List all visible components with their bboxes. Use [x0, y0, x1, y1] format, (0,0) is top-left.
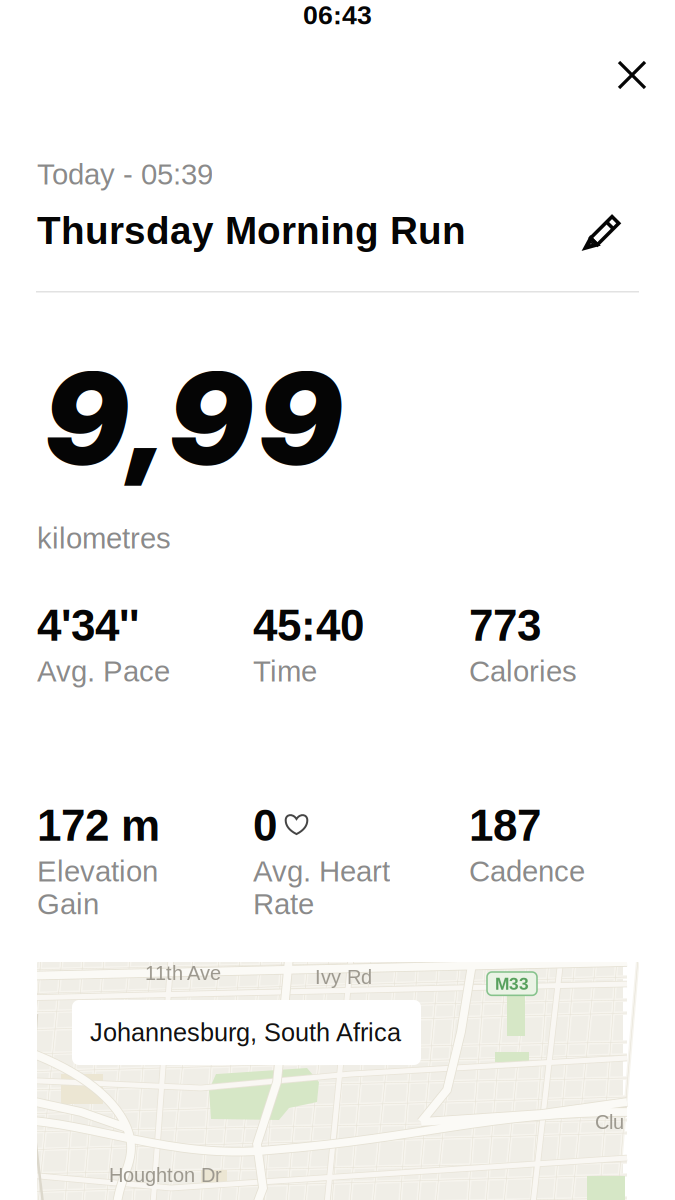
staticText: M33 [495, 974, 529, 993]
staticText: Houghton Dr [109, 1164, 222, 1186]
staticText: Johannesburg, South Africa [90, 1018, 401, 1047]
staticText: Calories [469, 655, 577, 688]
staticText: kilometres [37, 522, 171, 555]
staticText: Elevation Gain [37, 855, 158, 920]
staticText: Time [253, 655, 317, 688]
staticText: 187 [469, 801, 541, 850]
button[interactable]: Edit [572, 198, 634, 260]
staticText: Ivy Rd [315, 966, 372, 988]
staticText: Avg. Heart Rate [253, 855, 390, 920]
staticText: 11th Ave [145, 962, 221, 984]
staticText: 45:40 [253, 601, 364, 650]
staticText: Avg. Pace [37, 655, 170, 688]
staticText: 4'34'' [37, 601, 139, 650]
staticText: 172 m [37, 801, 160, 850]
button[interactable]: Close [600, 43, 664, 107]
staticText: 9,99 [45, 342, 341, 495]
staticText: Cadence [469, 855, 585, 888]
staticText: Thursday Morning Run [37, 209, 466, 252]
staticText: 773 [469, 601, 541, 650]
staticText: Today - 05:39 [37, 158, 213, 191]
staticText: Clu [595, 1111, 624, 1133]
staticText: 06:43 [303, 0, 372, 30]
staticText: 0 [253, 801, 277, 850]
